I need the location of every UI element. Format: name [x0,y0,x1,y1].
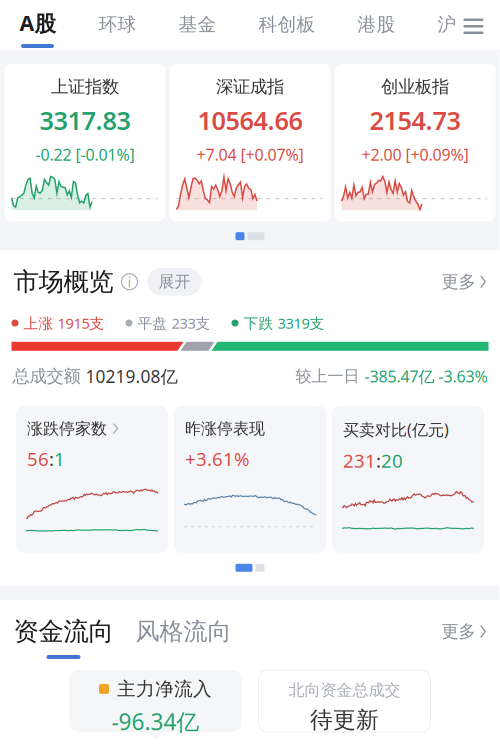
staticText: 资金流向 [13,616,113,647]
staticText: 北向资金总成交 [288,680,400,700]
staticText: +2.00 [+0.09%] [361,144,468,165]
staticText: 涨跌停家数 [27,419,107,438]
staticText: 10564.66 [197,103,302,137]
staticText: 3317.83 [39,103,130,137]
staticText: 风格流向 [135,617,231,646]
staticText: 2154.73 [369,103,460,137]
button[interactable]: 深证成指 [169,64,330,221]
button[interactable]: 资金流向 [13,616,113,659]
staticText: A股 [19,9,55,37]
staticText: -96.34亿 [111,706,199,736]
button[interactable]: 环球 [77,0,157,50]
staticText: 环球 [98,13,136,36]
staticText: 沪 [437,13,456,36]
staticText: 总成交额 [12,366,85,387]
staticText: 展开 [158,272,190,292]
staticText: 深证成指 [216,76,284,97]
button[interactable]: 更多 [441,621,486,654]
button[interactable]: 上证指数 [4,64,165,221]
button[interactable]: 更多 [441,271,486,292]
staticText: +3.61% [185,446,250,471]
button[interactable]: 昨涨停表现 [174,406,326,553]
button[interactable]: 创业板指 [334,64,495,221]
staticText: 买卖对比(亿元) [343,419,449,440]
button[interactable]: 展开 [137,268,201,296]
staticText: 待更新 [310,706,379,734]
staticText: 较上一日 [295,366,364,386]
staticText: 更多 [441,271,475,292]
staticText: i [127,272,131,291]
button[interactable]: 风格流向 [113,617,231,658]
staticText: 市场概览 [13,266,113,297]
staticText: 1 [54,446,65,471]
staticText: 更多 [441,621,475,642]
staticText: 56 [27,446,49,471]
button[interactable]: A股 [0,0,77,50]
staticText: 创业板指 [381,76,449,97]
staticText: : [49,446,54,471]
staticText: 231 [343,448,376,473]
staticText: 平盘 233支 [137,313,210,333]
staticText: 下跌 3319支 [243,313,324,333]
staticText: 主力净流入 [117,677,212,700]
staticText: 上涨 1915支 [23,313,104,333]
button[interactable]: 科创板 [237,0,336,50]
button[interactable]: 涨跌停家数 [16,406,168,553]
staticText: +7.04 [+0.07%] [196,144,303,165]
button[interactable]: 港股 [336,0,416,50]
staticText: 10219.08亿 [85,365,177,388]
button[interactable]: 买卖对比(亿元) [332,406,484,553]
staticText: : [376,448,381,473]
staticText: 港股 [357,13,395,36]
button[interactable]: Info [113,272,137,291]
button[interactable]: 基金 [157,0,237,50]
button[interactable]: 沪 [416,0,477,50]
staticText: 20 [381,448,403,473]
staticText: -385.47亿 -3.63% [364,366,487,387]
button[interactable]: 主力净流入 [69,670,241,732]
staticText: 昨涨停表现 [185,419,265,438]
staticText: 上证指数 [51,76,119,97]
staticText: -0.22 [-0.01%] [35,144,134,165]
staticText: 基金 [178,13,216,36]
staticText: 科创板 [258,13,315,36]
button[interactable]: More categories [453,0,500,50]
button[interactable]: 北向资金总成交 [258,670,430,732]
